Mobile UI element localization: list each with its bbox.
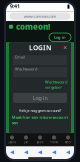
staticText: Email xyxy=(15,54,25,60)
staticText: comeon! xyxy=(16,21,50,32)
staticText: Heb je nog geen account? xyxy=(18,108,61,113)
staticText: LOGIN xyxy=(29,43,51,52)
staticText: ◀ xyxy=(66,149,70,155)
staticText: Live xyxy=(23,140,28,144)
staticText: ◀ xyxy=(10,149,14,155)
staticText: Log in xyxy=(32,94,47,101)
staticText: Promo xyxy=(49,140,58,144)
staticText: Log in xyxy=(54,35,66,40)
staticText: Sport xyxy=(36,140,43,144)
staticText: ◀ xyxy=(52,149,56,155)
staticText: ◀ xyxy=(38,149,42,155)
staticText: Wachtwoord xyxy=(15,66,37,72)
staticText: Meer xyxy=(64,140,71,144)
staticText: ✕ xyxy=(63,45,67,51)
staticText: www.comeon.com xyxy=(23,14,56,19)
staticText: ▮ xyxy=(67,3,70,9)
staticText: ◀ xyxy=(24,149,28,155)
staticText: Casino xyxy=(7,140,16,144)
staticText: Maak hier een nieuw account aan xyxy=(11,115,68,125)
staticText: 9:41 xyxy=(10,3,20,10)
staticText: Wachtwoord vergeten? xyxy=(45,79,67,90)
